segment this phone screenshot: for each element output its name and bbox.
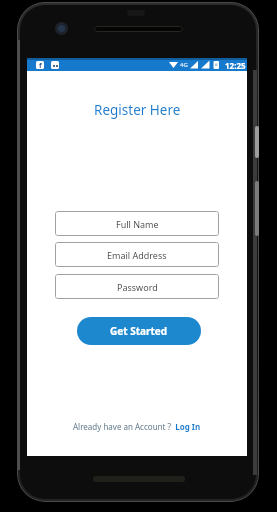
staticText: Get Started xyxy=(110,324,168,338)
button[interactable]: Password xyxy=(55,274,219,299)
staticText: Log In xyxy=(171,421,201,432)
button[interactable]: Full Name xyxy=(55,211,219,236)
staticText: f xyxy=(39,61,42,69)
staticText: Register Here xyxy=(94,101,181,119)
staticText: Email Address xyxy=(107,249,167,261)
button[interactable]: Log In xyxy=(171,421,201,432)
staticText: 12:25 xyxy=(225,60,246,71)
staticText: Already have an Account ? xyxy=(73,421,171,432)
button[interactable]: Get Started xyxy=(77,317,201,345)
staticText: Password xyxy=(117,281,158,293)
staticText: 4G xyxy=(180,61,188,69)
staticText: Full Name xyxy=(116,218,159,230)
button[interactable]: Email Address xyxy=(55,242,219,267)
